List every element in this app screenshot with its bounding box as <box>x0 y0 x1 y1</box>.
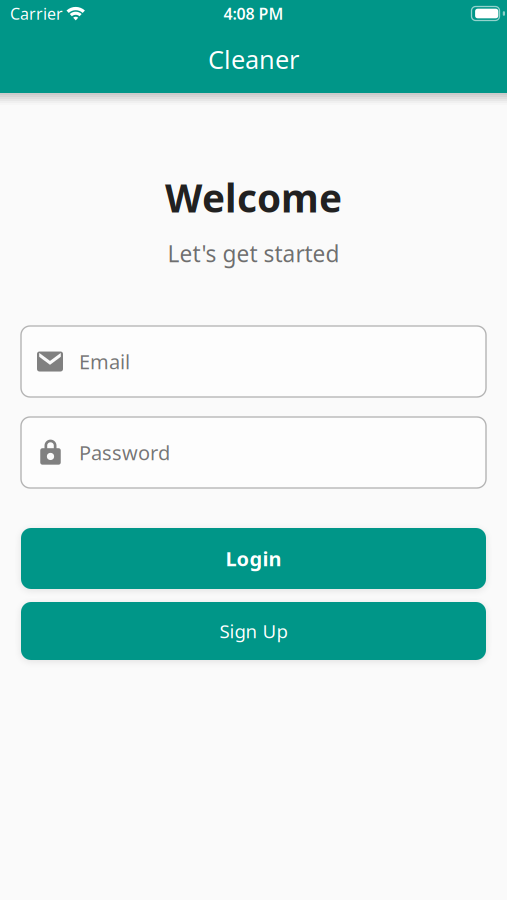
staticText: 4:08 PM <box>223 3 283 24</box>
staticText: Let's get started <box>167 238 339 268</box>
staticText: Cleaner <box>208 42 299 76</box>
staticText: Carrier <box>10 3 63 24</box>
button[interactable]: Login <box>21 528 486 589</box>
staticText: Password <box>79 439 170 466</box>
staticText: Welcome <box>165 172 342 223</box>
button[interactable]: Password <box>21 417 486 488</box>
staticText: Email <box>79 348 130 375</box>
button[interactable]: Email <box>21 326 486 397</box>
button[interactable]: Sign Up <box>21 602 486 660</box>
staticText: Login <box>225 545 281 572</box>
staticText: Sign Up <box>219 619 287 643</box>
